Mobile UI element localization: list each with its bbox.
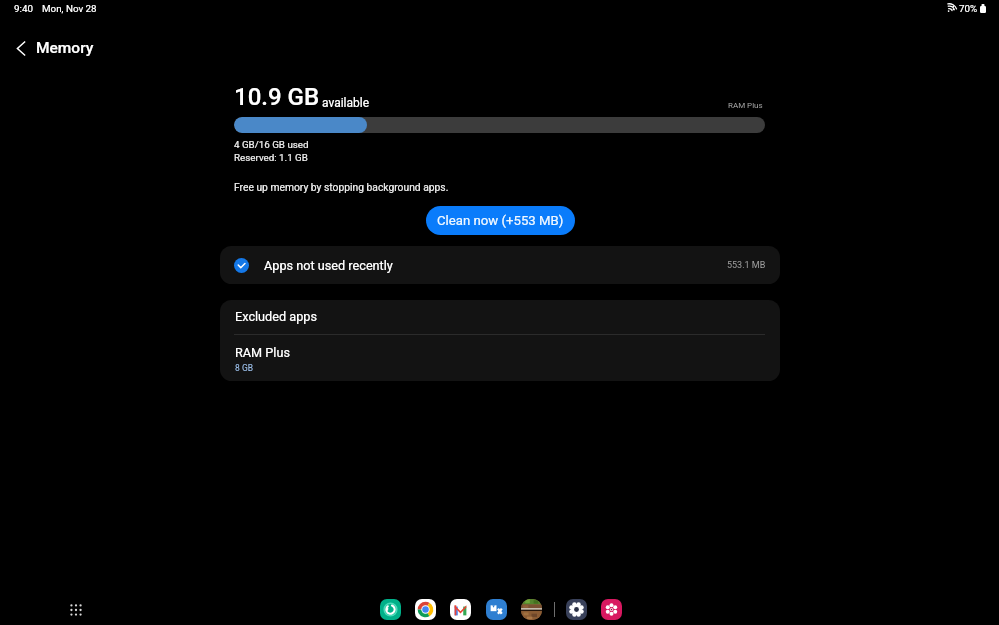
staticText: 70% [959,3,978,14]
staticText: 8 GB [235,363,253,373]
staticText: Memory [36,39,94,57]
button[interactable]: Settings [563,596,589,622]
button[interactable]: Minecraft [518,596,544,622]
button[interactable]: Gmail [447,596,473,622]
button[interactable]: Clean now (+553 MB) [426,206,575,235]
staticText: Free up memory by stopping background ap… [234,181,449,193]
button[interactable]: Digital Wellbeing [377,596,403,622]
button[interactable]: Chrome [412,596,438,622]
button[interactable]: Apps not used recently [220,246,780,284]
staticText: Excluded apps [235,309,317,324]
staticText: RAM Plus [728,101,763,110]
button[interactable]: Photo editor [598,596,624,622]
staticText: 10.9 GB [234,83,320,111]
staticText: Mon, Nov 28 [42,3,97,14]
staticText: 9:40 [14,3,33,14]
staticText: available [322,96,370,110]
staticText: Clean now (+553 MB) [437,213,564,228]
button[interactable]: All apps [64,598,87,621]
button[interactable]: Files [483,596,509,622]
staticText: Reserved: 1.1 GB [234,152,308,163]
staticText: 553.1 MB [727,260,766,271]
staticText: Apps not used recently [264,258,393,273]
button[interactable]: RAM Plus [220,335,780,381]
button[interactable]: Back [4,31,38,65]
staticText: RAM Plus [235,345,290,360]
staticText: 4 GB/16 GB used [234,139,309,150]
